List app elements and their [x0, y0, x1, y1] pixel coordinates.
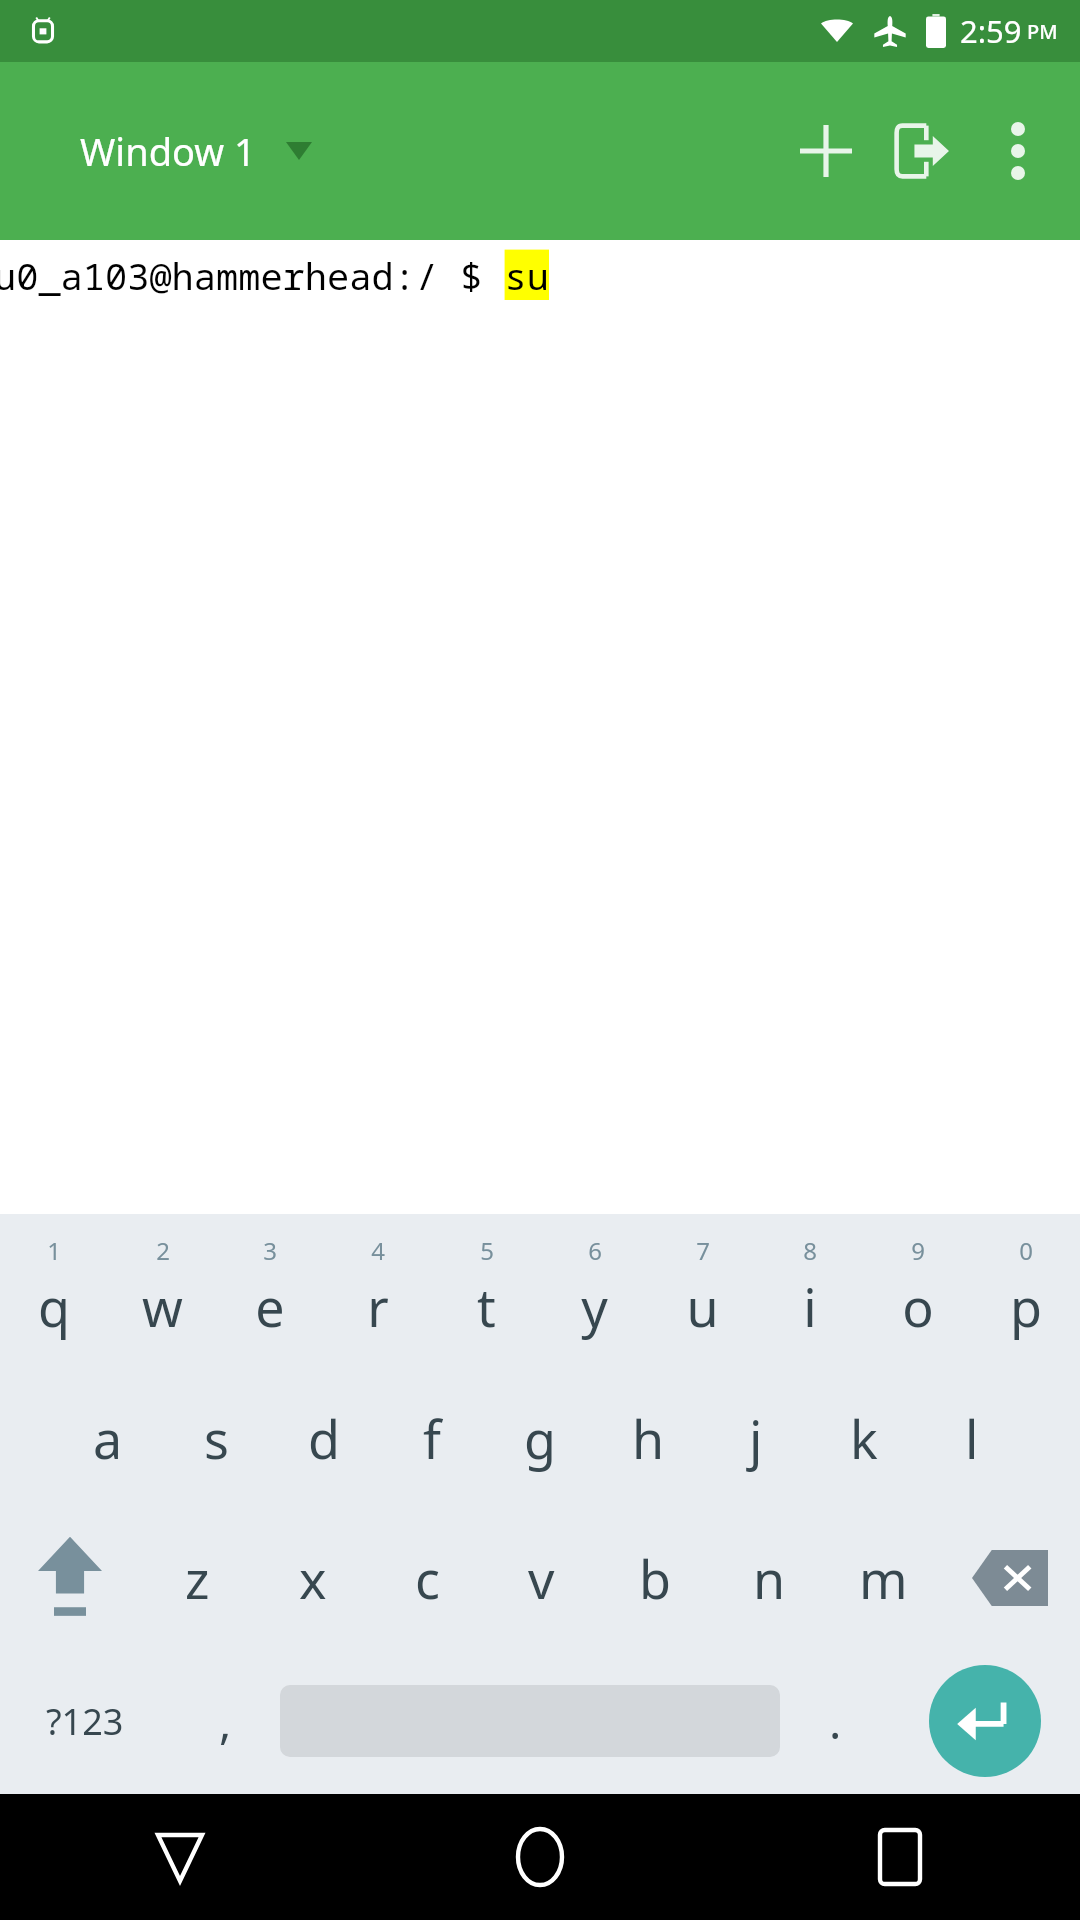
button[interactable]: Recents — [720, 1794, 1080, 1920]
button[interactable]: 2 — [108, 1220, 216, 1368]
button[interactable]: 8 — [756, 1220, 864, 1368]
staticText: j — [749, 1403, 763, 1474]
button[interactable]: c — [370, 1508, 484, 1648]
button[interactable]: Backspace — [940, 1508, 1080, 1648]
button[interactable]: 3 — [216, 1220, 324, 1368]
staticText: . — [829, 1690, 842, 1753]
button[interactable]: 6 — [540, 1220, 648, 1368]
staticText: d — [308, 1403, 340, 1474]
staticText: c — [415, 1543, 440, 1614]
button[interactable]: b — [598, 1508, 712, 1648]
button[interactable]: g — [486, 1368, 594, 1508]
staticText: 6 — [588, 1234, 602, 1267]
staticText: a — [93, 1403, 123, 1474]
button[interactable]: j — [702, 1368, 810, 1508]
staticText: v — [528, 1543, 555, 1614]
button[interactable]: New window — [778, 103, 874, 199]
button[interactable]: Back — [0, 1794, 360, 1920]
staticText: o — [902, 1271, 934, 1342]
staticText: r — [367, 1271, 389, 1342]
staticText: h — [632, 1403, 665, 1474]
button[interactable]: a — [54, 1368, 162, 1508]
button[interactable]: 5 — [432, 1220, 540, 1368]
button[interactable]: f — [378, 1368, 486, 1508]
staticText: l — [965, 1403, 979, 1474]
staticText: i — [803, 1271, 817, 1342]
staticText: p — [1010, 1271, 1042, 1342]
staticText: 7 — [696, 1234, 710, 1267]
button[interactable]: s — [162, 1368, 270, 1508]
staticText: g — [524, 1403, 556, 1474]
staticText: z — [185, 1543, 210, 1614]
button[interactable]: n — [712, 1508, 826, 1648]
button[interactable]: ?123 — [0, 1651, 170, 1791]
staticText: x — [299, 1543, 327, 1614]
button[interactable]: 0 — [972, 1220, 1080, 1368]
button[interactable]: d — [270, 1368, 378, 1508]
staticText: b — [639, 1543, 671, 1614]
button[interactable]: Space — [280, 1651, 780, 1791]
staticText: , — [219, 1690, 232, 1753]
button[interactable]: v — [484, 1508, 598, 1648]
staticText: 2:59 — [960, 10, 1022, 52]
staticText: 2 — [156, 1234, 170, 1267]
button[interactable]: . — [780, 1651, 890, 1791]
staticText: PM — [1027, 18, 1058, 45]
button[interactable]: Home — [360, 1794, 720, 1920]
staticText: y — [581, 1271, 608, 1342]
button[interactable]: 9 — [864, 1220, 972, 1368]
button[interactable]: Shift — [0, 1508, 140, 1648]
staticText: 9 — [911, 1234, 925, 1267]
staticText: m — [859, 1543, 908, 1614]
button[interactable]: u0_a103@hammerhead:/ $ su — [0, 240, 1080, 1214]
button[interactable]: Exit — [874, 103, 970, 199]
staticText: n — [753, 1543, 786, 1614]
staticText: e — [255, 1271, 285, 1342]
button[interactable]: 4 — [324, 1220, 432, 1368]
staticText: 5 — [480, 1234, 494, 1267]
button[interactable]: x — [255, 1508, 370, 1648]
staticText: 1 — [47, 1234, 61, 1267]
staticText: w — [142, 1271, 183, 1342]
button[interactable]: 7 — [648, 1220, 756, 1368]
staticText: ?123 — [46, 1697, 124, 1746]
button[interactable]: z — [140, 1508, 255, 1648]
button[interactable]: Enter — [890, 1651, 1080, 1791]
staticText: f — [423, 1403, 441, 1474]
button[interactable]: m — [826, 1508, 940, 1648]
staticText: 0 — [1019, 1234, 1033, 1267]
button[interactable]: 1 — [0, 1220, 108, 1368]
staticText: s — [204, 1403, 229, 1474]
staticText: u0_a103@hammerhead:/ $ su — [0, 250, 549, 300]
staticText: u — [686, 1271, 719, 1342]
button[interactable]: Window 1 — [0, 109, 336, 193]
button[interactable]: k — [810, 1368, 918, 1508]
staticText: t — [477, 1271, 496, 1342]
staticText: Window 1 — [80, 125, 256, 177]
staticText: 3 — [263, 1234, 277, 1267]
staticText: k — [850, 1403, 878, 1474]
staticText: 8 — [803, 1234, 817, 1267]
button[interactable]: More options — [970, 103, 1066, 199]
button[interactable]: , — [170, 1651, 280, 1791]
button[interactable]: h — [594, 1368, 702, 1508]
staticText: q — [38, 1271, 70, 1342]
staticText: 4 — [371, 1234, 385, 1267]
button[interactable]: l — [918, 1368, 1026, 1508]
